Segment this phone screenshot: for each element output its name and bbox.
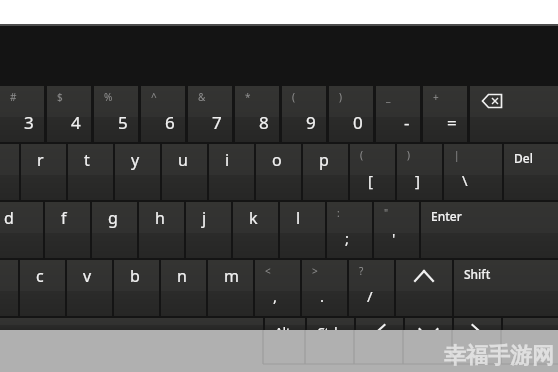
- staticText: ;: [345, 228, 350, 248]
- staticText: -: [404, 111, 410, 134]
- button[interactable]: l key: [280, 202, 325, 258]
- staticText: (: [360, 148, 363, 162]
- staticText: ^: [151, 90, 157, 104]
- staticText: g: [108, 207, 118, 229]
- button[interactable]: \ key: [444, 144, 502, 200]
- staticText: ": [384, 206, 389, 220]
- button[interactable]: 9 key: [282, 86, 326, 142]
- staticText: $: [57, 90, 63, 104]
- button[interactable]: t key: [68, 144, 113, 200]
- button[interactable]: 5 key: [94, 86, 138, 142]
- staticText: d: [4, 207, 14, 229]
- staticText: #: [10, 90, 17, 104]
- button[interactable]: y key: [115, 144, 160, 200]
- staticText: <: [265, 264, 271, 278]
- staticText: t: [84, 149, 90, 171]
- staticText: v: [83, 265, 92, 287]
- button[interactable]: o key: [256, 144, 301, 200]
- staticText: m: [224, 265, 239, 287]
- button[interactable]: Left arrow: [356, 318, 403, 330]
- staticText: \: [462, 170, 468, 190]
- staticText: f: [61, 207, 67, 229]
- staticText: Shift: [464, 266, 491, 282]
- staticText: 0: [353, 111, 363, 134]
- staticText: p: [319, 149, 329, 171]
- button[interactable]: Backspace: [470, 86, 558, 142]
- staticText: o: [272, 149, 282, 171]
- button[interactable]: v key: [67, 260, 112, 316]
- staticText: *: [245, 90, 251, 104]
- button[interactable]: 3 key: [0, 86, 44, 142]
- staticText: 7: [212, 111, 222, 134]
- button[interactable]: ' key: [374, 202, 419, 258]
- button[interactable]: ] key: [397, 144, 442, 200]
- button[interactable]: i key: [209, 144, 254, 200]
- button[interactable]: 4 key: [47, 86, 91, 142]
- button[interactable]: e key: [0, 144, 19, 200]
- button[interactable]: Del key: [504, 144, 558, 200]
- button[interactable]: [ key: [350, 144, 395, 200]
- button[interactable]: p key: [303, 144, 348, 200]
- button[interactable]: , key: [255, 260, 300, 316]
- button[interactable]: - key: [376, 86, 420, 142]
- button[interactable]: b key: [114, 260, 159, 316]
- staticText: l: [296, 207, 301, 229]
- staticText: ,: [273, 286, 278, 306]
- button[interactable]: ; key: [327, 202, 372, 258]
- staticText: Alt: [275, 324, 291, 336]
- staticText: .: [320, 286, 325, 306]
- button[interactable]: Down arrow: [405, 318, 452, 330]
- button[interactable]: m key: [208, 260, 253, 316]
- button[interactable]: Ctrl key: [307, 318, 354, 330]
- button[interactable]: j key: [186, 202, 231, 258]
- button[interactable]: 0 key: [329, 86, 373, 142]
- button[interactable]: c key: [20, 260, 65, 316]
- button[interactable]: Enter key: [421, 202, 558, 258]
- button[interactable]: Right arrow: [454, 318, 501, 330]
- staticText: ?: [359, 264, 364, 278]
- staticText: ): [407, 148, 410, 162]
- button[interactable]: n key: [161, 260, 206, 316]
- button[interactable]: 8 key: [235, 86, 279, 142]
- button[interactable]: u key: [162, 144, 207, 200]
- staticText: 幸福手游网: [444, 342, 554, 370]
- staticText: +: [433, 90, 439, 104]
- staticText: n: [177, 265, 187, 287]
- staticText: %: [104, 90, 113, 104]
- button[interactable]: Shift key: [454, 260, 558, 316]
- button[interactable]: 6 key: [141, 86, 185, 142]
- staticText: 3: [24, 111, 34, 134]
- button[interactable]: Key: [503, 318, 558, 330]
- staticText: r: [37, 149, 44, 171]
- button[interactable]: Alt key: [265, 318, 305, 330]
- staticText: c: [36, 265, 44, 287]
- staticText: &: [198, 90, 206, 104]
- button[interactable]: / key: [349, 260, 394, 316]
- staticText: Enter: [431, 208, 462, 224]
- button[interactable]: 7 key: [188, 86, 232, 142]
- button[interactable]: = key: [423, 86, 467, 142]
- button[interactable]: Up arrow: [396, 260, 452, 316]
- staticText: /: [367, 286, 373, 306]
- staticText: 5: [118, 111, 128, 134]
- staticText: [: [368, 170, 373, 190]
- staticText: u: [178, 149, 188, 171]
- button[interactable]: . key: [302, 260, 347, 316]
- staticText: 9: [306, 111, 316, 134]
- staticText: b: [130, 265, 140, 287]
- button[interactable]: Space bar: [0, 318, 263, 330]
- staticText: Del: [514, 150, 533, 166]
- button[interactable]: k key: [233, 202, 278, 258]
- button[interactable]: r key: [21, 144, 66, 200]
- button[interactable]: f key: [45, 202, 90, 258]
- staticText: j: [202, 207, 207, 229]
- button[interactable]: x key: [0, 260, 18, 316]
- staticText: 8: [259, 111, 269, 134]
- staticText: =: [447, 111, 457, 134]
- button[interactable]: g key: [92, 202, 137, 258]
- button[interactable]: d key: [0, 202, 43, 258]
- button[interactable]: h key: [139, 202, 184, 258]
- staticText: ]: [415, 170, 420, 190]
- staticText: |: [454, 148, 460, 162]
- staticText: :: [337, 206, 340, 220]
